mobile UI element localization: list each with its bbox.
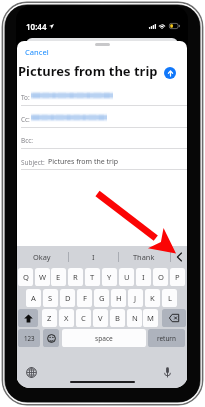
staticText: Thank xyxy=(133,252,155,262)
button[interactable]: T xyxy=(85,268,100,286)
button[interactable]: S xyxy=(43,289,58,307)
button[interactable]: H xyxy=(111,289,126,307)
button[interactable]: G xyxy=(94,289,109,307)
button[interactable]: Shift xyxy=(18,309,38,327)
button[interactable]: space xyxy=(62,329,146,347)
staticText: P xyxy=(175,272,180,282)
button[interactable]: L xyxy=(162,289,177,307)
button[interactable]: W xyxy=(35,268,50,286)
button[interactable]: Backspace xyxy=(162,309,186,327)
button[interactable]: Emoji xyxy=(43,329,59,347)
staticText: S xyxy=(48,293,53,303)
button[interactable]: Thank xyxy=(118,246,170,267)
button[interactable]: J xyxy=(128,289,143,307)
button[interactable]: Q xyxy=(18,268,33,286)
button[interactable]: N xyxy=(127,309,142,327)
staticText: L xyxy=(168,293,172,303)
staticText: V xyxy=(98,313,103,323)
staticText: space xyxy=(95,334,113,343)
button[interactable]: Y xyxy=(102,268,117,286)
staticText: 10:44 xyxy=(26,21,47,32)
button[interactable]: C xyxy=(76,309,91,327)
staticText: H xyxy=(116,293,122,303)
staticText: Cancel xyxy=(25,47,49,57)
staticText: A xyxy=(31,293,36,303)
button[interactable]: P xyxy=(170,268,185,286)
button[interactable]: Okay xyxy=(17,246,68,267)
staticText: Y xyxy=(107,272,112,282)
staticText: O xyxy=(158,272,164,282)
button[interactable]: Send xyxy=(164,67,176,79)
staticText: T xyxy=(90,272,95,282)
button[interactable]: M xyxy=(143,309,158,327)
staticText: C xyxy=(81,313,86,323)
staticText: B xyxy=(115,313,120,323)
button[interactable]: Z xyxy=(42,309,57,327)
staticText: M xyxy=(147,313,154,323)
staticText: D xyxy=(65,293,71,303)
staticText: W xyxy=(39,272,47,282)
staticText: Cc: xyxy=(21,115,30,124)
staticText: N xyxy=(132,313,138,323)
button[interactable]: O xyxy=(153,268,168,286)
staticText: To: xyxy=(21,93,30,102)
button[interactable]: Cancel xyxy=(22,45,52,59)
button[interactable]: R xyxy=(68,268,83,286)
staticText: I xyxy=(92,252,95,262)
staticText: Pictures from the trip xyxy=(48,157,119,167)
button[interactable]: A xyxy=(26,289,41,307)
button[interactable]: I xyxy=(68,246,119,267)
staticText: K xyxy=(150,293,155,303)
button[interactable]: K xyxy=(145,289,160,307)
button[interactable]: X xyxy=(59,309,74,327)
staticText: E xyxy=(56,272,61,282)
button[interactable]: Return xyxy=(148,329,185,347)
staticText: X xyxy=(64,313,69,323)
staticText: G xyxy=(99,293,105,303)
staticText: J xyxy=(134,293,137,303)
button[interactable]: Switch keyboard xyxy=(24,365,38,379)
button[interactable]: B xyxy=(110,309,125,327)
staticText: F xyxy=(83,293,87,303)
staticText: U xyxy=(124,272,130,282)
button[interactable]: U xyxy=(119,268,134,286)
button[interactable]: D xyxy=(60,289,75,307)
staticText: Bcc: xyxy=(21,136,34,145)
staticText: R xyxy=(73,272,78,282)
staticText: I xyxy=(142,272,145,282)
button[interactable]: Dictate xyxy=(160,365,174,379)
staticText: 123 xyxy=(24,334,35,342)
staticText: Pictures from the trip xyxy=(18,62,158,80)
button[interactable]: I xyxy=(136,268,151,286)
button[interactable]: V xyxy=(93,309,108,327)
staticText: return xyxy=(157,334,176,343)
staticText: Subject: xyxy=(21,158,45,167)
button[interactable]: E xyxy=(51,268,66,286)
button[interactable]: Numbers xyxy=(18,329,40,347)
staticText: Q xyxy=(23,272,29,282)
staticText: Okay xyxy=(33,252,51,262)
button[interactable]: Hide predictions xyxy=(170,246,187,267)
button[interactable]: F xyxy=(77,289,92,307)
staticText: Z xyxy=(47,313,52,323)
